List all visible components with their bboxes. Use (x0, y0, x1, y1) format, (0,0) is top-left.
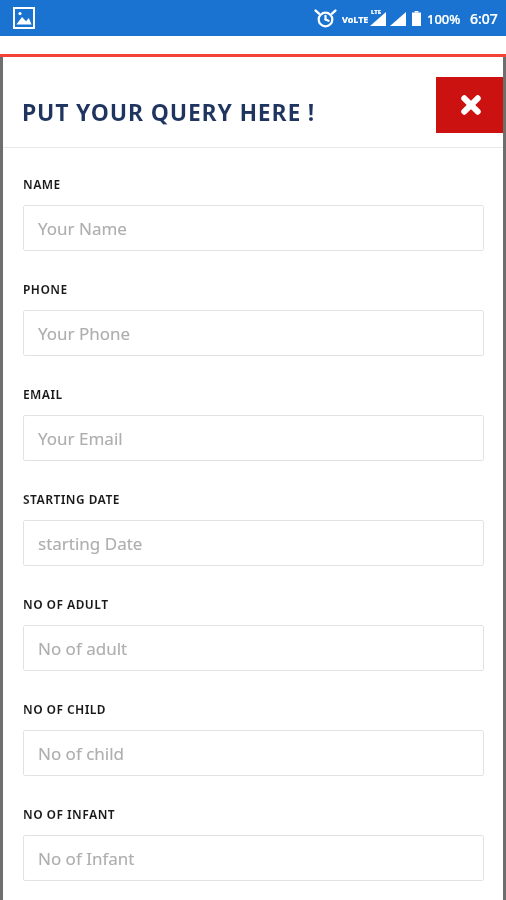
staticText: NO OF CHILD (23, 701, 107, 717)
staticText: PHONE (23, 281, 68, 297)
button[interactable]: Your Name (23, 205, 484, 251)
staticText: Your Phone (38, 322, 131, 345)
staticText: PUT YOUR QUERY HERE ! (22, 96, 316, 127)
staticText: Your Name (38, 217, 127, 240)
staticText: No of Infant (38, 847, 135, 870)
staticText: VoLTE (342, 13, 369, 25)
staticText: Your Email (38, 427, 123, 450)
staticText: NO OF ADULT (23, 596, 109, 612)
staticText: 6:07 (470, 9, 498, 28)
staticText: STARTING DATE (23, 491, 120, 507)
staticText: LTE (371, 8, 382, 16)
staticText: NO OF INFANT (23, 806, 116, 822)
staticText: starting Date (38, 532, 143, 555)
button[interactable]: No of adult (23, 625, 484, 671)
button[interactable]: starting Date (23, 520, 484, 566)
button[interactable]: Your Email (23, 415, 484, 461)
button[interactable]: Close (436, 77, 506, 133)
staticText: NAME (23, 176, 61, 192)
button[interactable]: No of Infant (23, 835, 484, 881)
button[interactable]: Your Phone (23, 310, 484, 356)
staticText: No of child (38, 742, 125, 765)
staticText: 100% (427, 10, 461, 28)
staticText: EMAIL (23, 386, 63, 402)
button[interactable]: No of child (23, 730, 484, 776)
staticText: No of adult (38, 637, 128, 660)
